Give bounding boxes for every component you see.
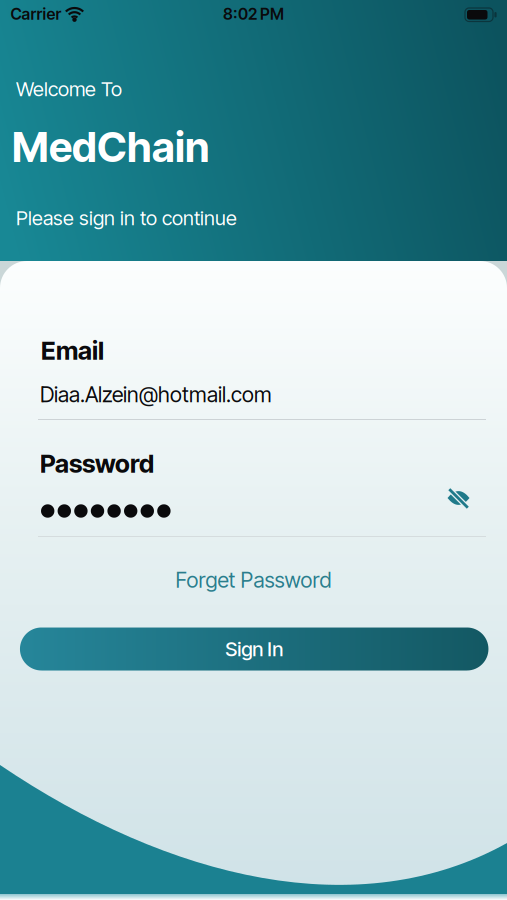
button[interactable]: Forget Password xyxy=(175,567,331,593)
staticText: Sign In xyxy=(225,637,283,661)
staticText: Carrier xyxy=(10,5,61,23)
staticText: Welcome To xyxy=(16,77,122,101)
staticText: Email xyxy=(41,336,104,365)
button[interactable]: Email, Diaa.Alzein@hotmail.com xyxy=(38,371,486,417)
button[interactable]: Sign In xyxy=(20,627,488,670)
staticText: Please sign in to continue xyxy=(16,206,237,230)
staticText: Password xyxy=(40,449,154,478)
staticText: MedChain xyxy=(12,123,209,171)
staticText: 8:02 PM xyxy=(223,5,284,23)
staticText: Forget Password xyxy=(175,567,331,593)
button[interactable]: Password xyxy=(38,488,486,534)
staticText: Diaa.Alzein@hotmail.com xyxy=(40,382,272,407)
button[interactable]: Show password xyxy=(438,478,478,518)
